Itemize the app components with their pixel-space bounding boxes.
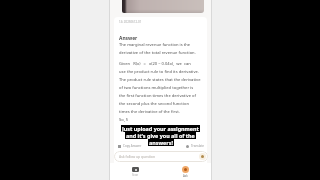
staticText: Answer [119, 35, 138, 42]
button[interactable]: Copy Answer [118, 144, 142, 148]
staticText: Given R(x) = x(20 − 0.04x), we can [119, 61, 191, 67]
button[interactable]: Ask [160, 163, 211, 180]
staticText: use the product rule to find its derivat… [119, 69, 199, 75]
staticText: Ask follow up question [119, 154, 156, 159]
staticText: 14: 20250612-01 [119, 20, 142, 24]
button[interactable]: Translate [186, 144, 204, 148]
staticText: answers! [149, 139, 173, 146]
staticText: Ask [183, 174, 188, 178]
staticText: Scan [132, 173, 139, 177]
staticText: times the derivative of the first. [119, 109, 180, 115]
staticText: The marginal revenue function is the [119, 42, 191, 48]
staticText: So, S [119, 117, 129, 123]
staticText: of two functions multiplied together is [119, 85, 194, 91]
staticText: the first function times the derivative … [119, 93, 196, 99]
staticText: and it's give you all of the [126, 132, 195, 139]
staticText: Translate [191, 144, 204, 148]
staticText: The product rule states that the derivat… [119, 77, 201, 83]
button[interactable]: Scan [110, 163, 160, 180]
staticText: Copy Answer [123, 144, 142, 148]
staticText: the second plus the second function [119, 101, 189, 107]
button[interactable]: Ask follow up question [114, 151, 208, 162]
staticText: derivative of the total revenue function… [119, 50, 196, 56]
button[interactable]: Send [199, 153, 206, 160]
staticText: Just upload your assignment [122, 125, 199, 132]
